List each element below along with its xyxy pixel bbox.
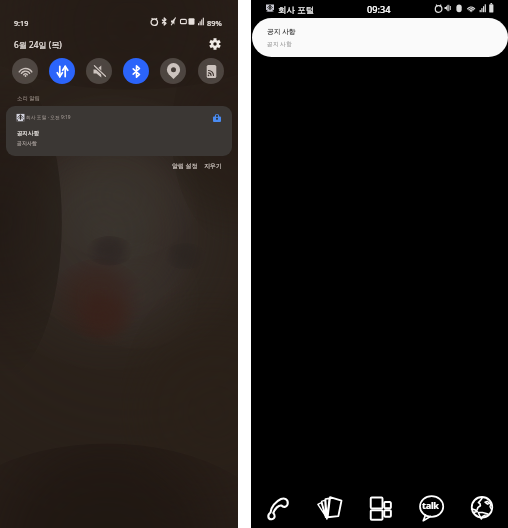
button[interactable]: 공지 사항 <box>252 18 508 57</box>
button[interactable]: Talk <box>406 466 457 528</box>
staticText: 소리 알림 <box>17 94 40 101</box>
button[interactable]: Call <box>251 466 303 528</box>
staticText: 지우기 <box>204 162 222 170</box>
staticText: 알림 설정 <box>172 162 198 170</box>
button[interactable]: Wi-Fi <box>8 54 42 88</box>
staticText: 회사 포털 · 오전 9:19 <box>26 114 71 121</box>
button[interactable]: Location <box>156 54 190 88</box>
staticText: 6월 24일 (목) <box>14 39 62 50</box>
staticText: 공지사항 <box>17 130 39 137</box>
staticText: 공지 사항 <box>267 27 296 36</box>
button[interactable]: Web <box>457 466 508 528</box>
button[interactable]: Settings <box>204 33 226 55</box>
button[interactable]: Bluetooth <box>119 54 153 88</box>
button[interactable]: Smart View <box>194 54 228 88</box>
button[interactable]: Cards <box>303 466 355 528</box>
staticText: talk <box>422 499 439 512</box>
staticText: 9:19 <box>14 18 29 28</box>
staticText: 공지 사항 <box>267 40 292 48</box>
button[interactable]: Mobile data <box>45 54 79 88</box>
button[interactable]: Sound off <box>82 54 116 88</box>
button[interactable]: 지우기 <box>200 159 226 173</box>
button[interactable]: QR code <box>355 466 406 528</box>
staticText: 공지사항 <box>17 140 37 146</box>
button[interactable]: 회사 포털 · 오전 9:19 <box>6 106 232 156</box>
button[interactable]: 알림 설정 <box>168 159 202 173</box>
staticText: 09:34 <box>367 3 391 16</box>
staticText: 89% <box>207 18 222 28</box>
staticText: 회사 포털 <box>278 4 315 16</box>
